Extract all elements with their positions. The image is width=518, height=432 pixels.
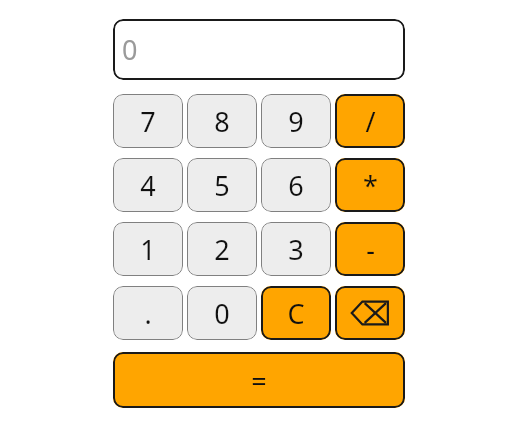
button[interactable]: 0 bbox=[187, 286, 257, 340]
staticText: 1 bbox=[140, 231, 156, 268]
staticText: 9 bbox=[288, 103, 304, 140]
button[interactable]: 4 bbox=[113, 158, 183, 212]
staticText: 0 bbox=[122, 31, 138, 68]
staticText: 8 bbox=[214, 103, 230, 140]
staticText: 6 bbox=[288, 167, 304, 204]
staticText: - bbox=[366, 231, 375, 268]
staticText: = bbox=[251, 362, 267, 399]
button[interactable]: / bbox=[335, 94, 405, 148]
button[interactable]: = bbox=[113, 352, 405, 408]
button[interactable]: 9 bbox=[261, 94, 331, 148]
staticText: 4 bbox=[140, 167, 156, 204]
button[interactable]: 8 bbox=[187, 94, 257, 148]
staticText: 7 bbox=[140, 103, 156, 140]
button[interactable]: * bbox=[335, 158, 405, 212]
staticText: * bbox=[363, 167, 378, 204]
staticText: 2 bbox=[214, 231, 230, 268]
staticText: / bbox=[365, 103, 376, 140]
button[interactable]: 5 bbox=[187, 158, 257, 212]
button[interactable]: 0 bbox=[113, 19, 405, 80]
button[interactable]: . bbox=[113, 286, 183, 340]
staticText: . bbox=[144, 295, 152, 332]
staticText: 0 bbox=[214, 295, 230, 332]
staticText: 5 bbox=[214, 167, 230, 204]
button[interactable]: 2 bbox=[187, 222, 257, 276]
button[interactable]: - bbox=[335, 222, 405, 276]
button[interactable]: 6 bbox=[261, 158, 331, 212]
button[interactable]: 7 bbox=[113, 94, 183, 148]
button[interactable]: 1 bbox=[113, 222, 183, 276]
staticText: 3 bbox=[288, 231, 304, 268]
button[interactable]: Backspace bbox=[335, 286, 405, 340]
button[interactable]: 3 bbox=[261, 222, 331, 276]
button[interactable]: C bbox=[261, 286, 331, 340]
staticText: C bbox=[287, 295, 305, 332]
